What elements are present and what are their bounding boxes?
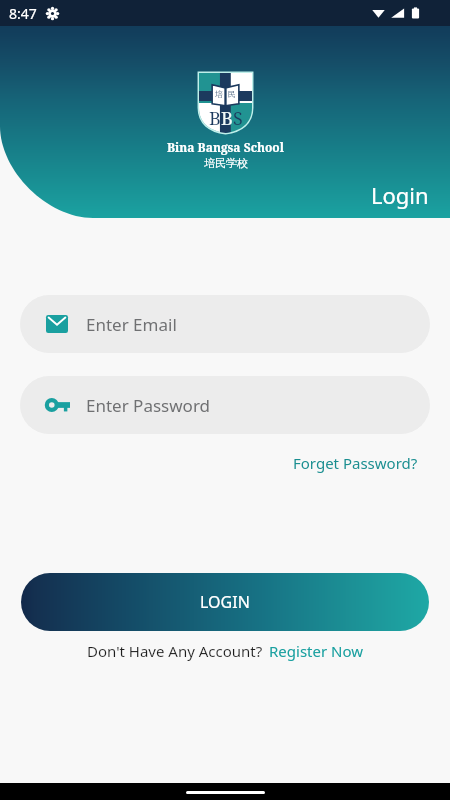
staticText: Bina Bangsa School — [167, 139, 284, 155]
staticText: 民 — [228, 89, 236, 99]
button[interactable]: Password input — [20, 376, 430, 434]
staticText: B — [209, 106, 221, 131]
button[interactable]: Register Now — [269, 641, 364, 661]
staticText: 8:47 — [9, 4, 37, 23]
staticText: Register Now — [269, 641, 364, 661]
button[interactable]: Forget Password? — [287, 449, 424, 477]
other: Email input — [46, 315, 68, 333]
button[interactable]: Email input — [20, 295, 430, 353]
staticText: 培民学校 — [204, 156, 248, 170]
staticText: B — [221, 106, 233, 131]
other: Password input — [46, 398, 70, 412]
staticText: Enter Email — [86, 313, 177, 336]
staticText: LOGIN — [200, 591, 250, 613]
staticText: Don't Have Any Account? — [87, 641, 263, 661]
staticText: Login — [371, 180, 429, 210]
staticText: 培 — [215, 89, 223, 99]
button[interactable]: LOGIN — [21, 573, 429, 631]
staticText: Enter Password — [86, 394, 211, 417]
staticText: S — [233, 106, 243, 131]
staticText: Forget Password? — [293, 453, 418, 473]
